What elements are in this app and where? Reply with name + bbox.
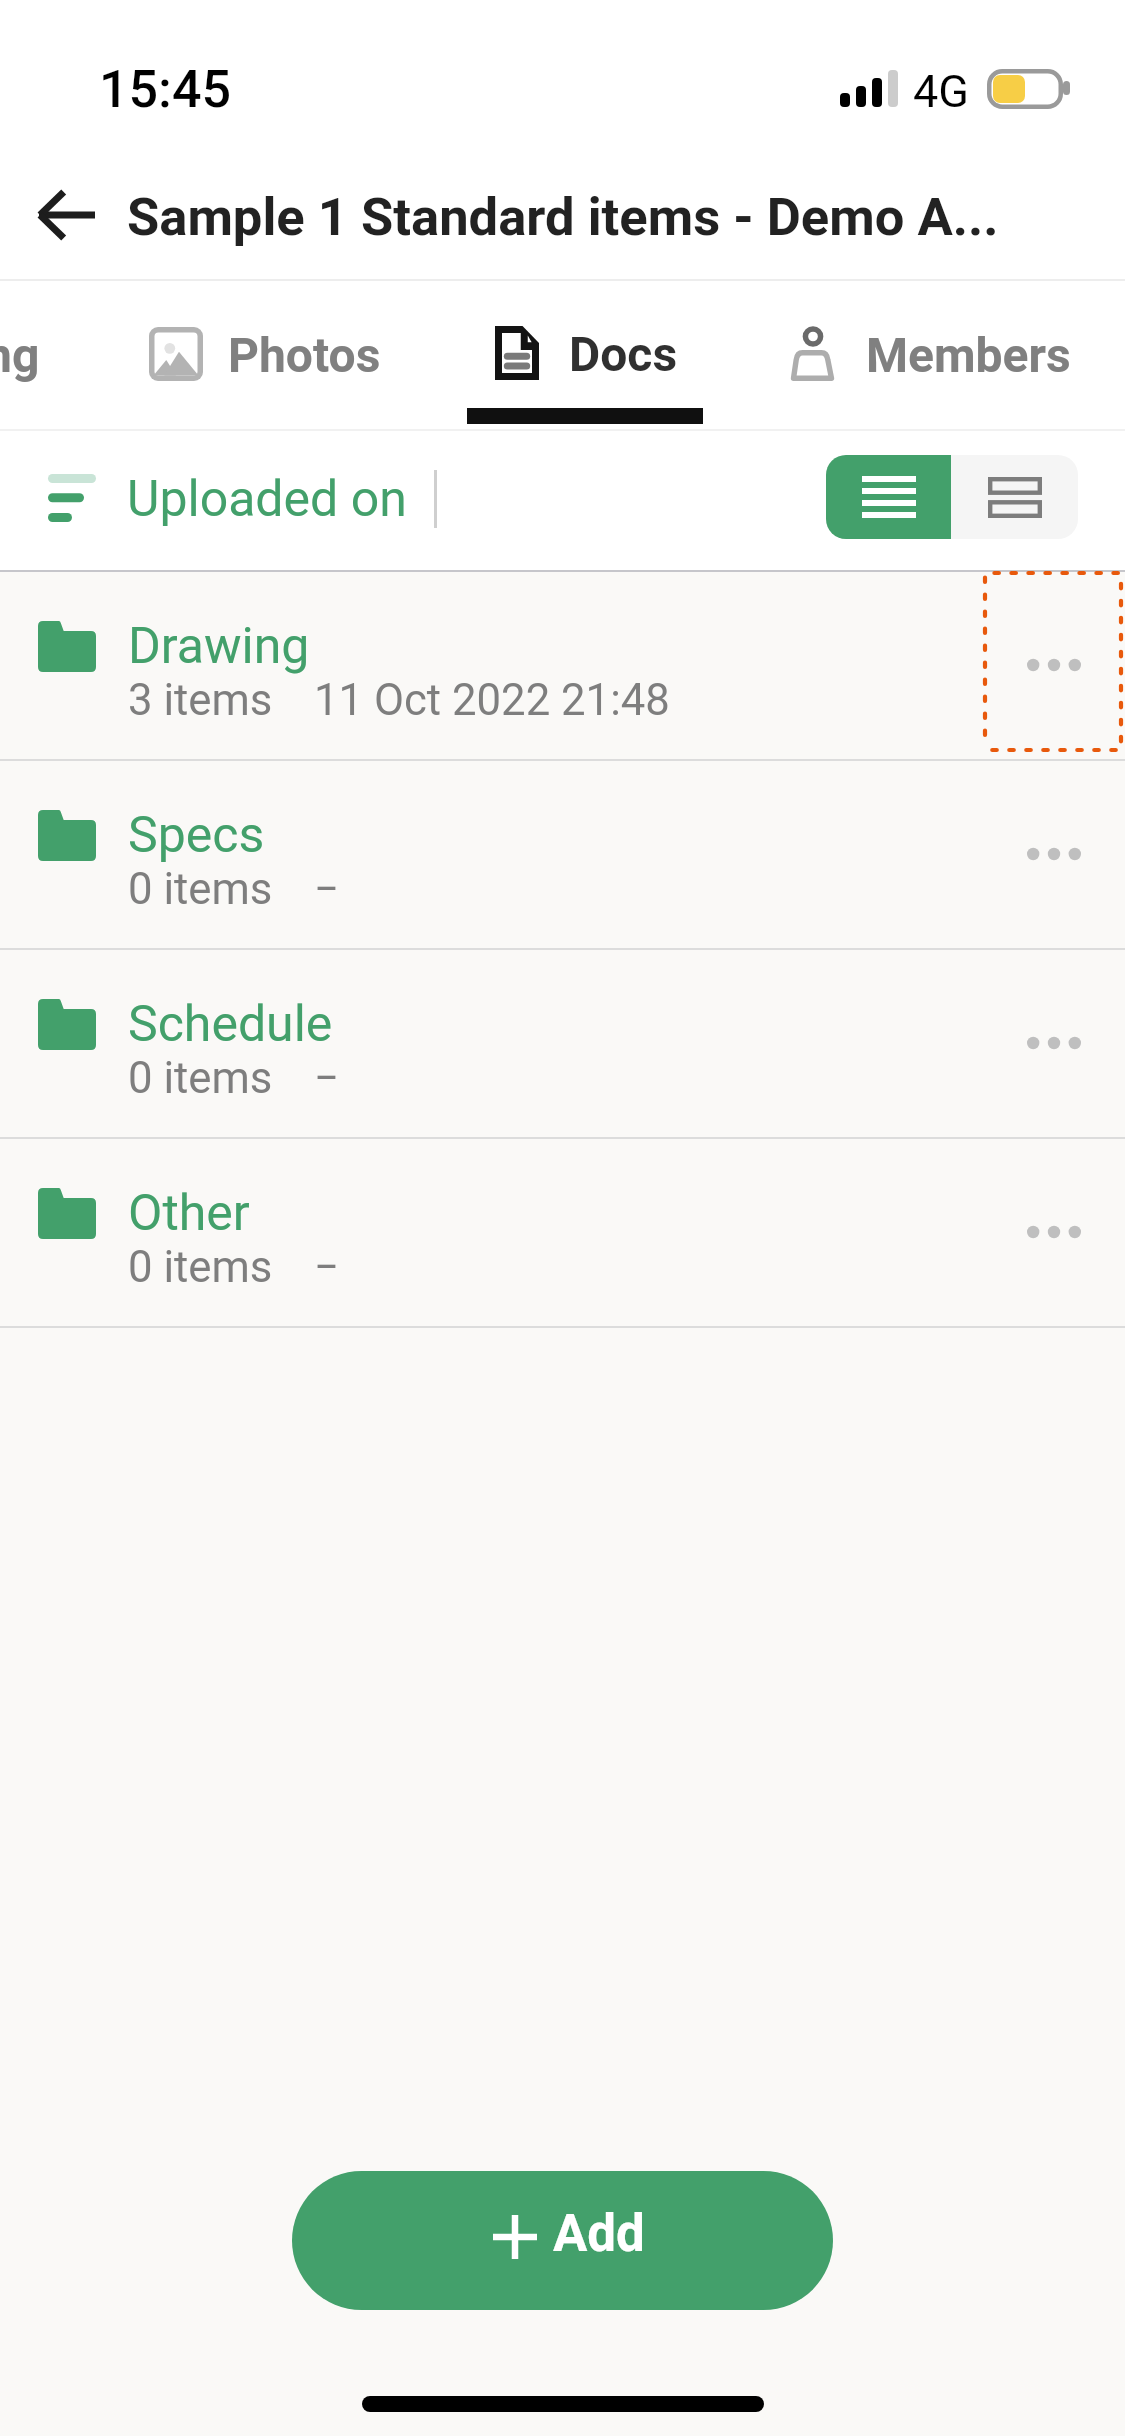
staticText: Other [128,1184,250,1243]
staticText: 0 items [128,863,273,914]
staticText: 15:45 [99,59,232,120]
staticText: 11 Oct 2022 21:48 [314,674,670,725]
button[interactable]: Drawing [0,572,1125,759]
staticText: Schedule [128,995,333,1054]
staticText: Photos [228,327,381,383]
button[interactable]: Docs [480,300,695,396]
staticText: ‒ [314,1241,339,1292]
button[interactable]: More options [985,950,1123,1136]
staticText: Drawing [128,617,310,676]
button[interactable]: Photos [135,300,405,396]
button[interactable]: More options [985,1139,1123,1325]
button[interactable]: Uploaded on [30,452,420,542]
button[interactable]: Add [292,2171,833,2310]
button[interactable]: Specs [0,761,1125,948]
button[interactable]: Other [0,1139,1125,1326]
button[interactable]: ng [0,300,40,396]
staticText: Specs [128,806,265,865]
staticText: 0 items [128,1052,273,1103]
staticText: Sample 1 Standard items - Demo A... [127,186,1067,248]
button[interactable]: List view [826,455,951,539]
staticText: ‒ [314,1052,339,1103]
staticText: Members [866,327,1071,383]
staticText: ng [0,327,40,383]
button[interactable]: Members [780,300,1080,396]
staticText: Uploaded on [127,470,407,529]
button[interactable]: Back [18,167,114,263]
staticText: Docs [569,326,678,382]
staticText: 4G [913,65,969,118]
button[interactable]: Schedule [0,950,1125,1137]
staticText: 3 items [128,674,273,725]
button[interactable]: More options [985,572,1123,758]
staticText: ‒ [314,863,339,914]
staticText: Add [553,2204,645,2264]
staticText: 0 items [128,1241,273,1292]
button[interactable]: More options [985,761,1123,947]
button[interactable]: Grid view [951,455,1078,539]
